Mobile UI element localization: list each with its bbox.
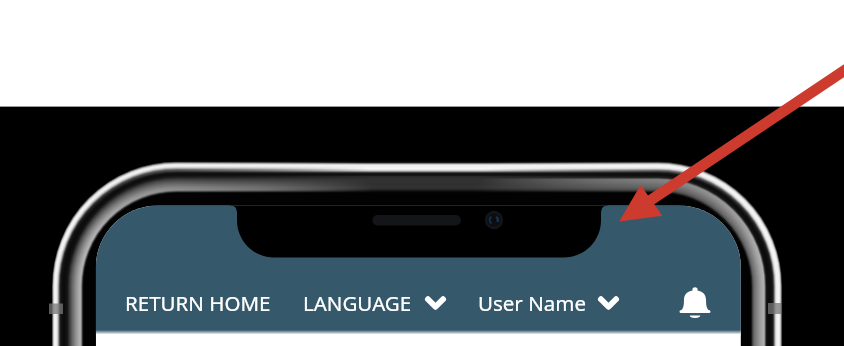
button[interactable]: RETURN HOME bbox=[125, 285, 271, 321]
staticText: User Name bbox=[478, 289, 586, 317]
button[interactable]: LANGUAGE bbox=[303, 285, 446, 321]
staticText: LANGUAGE bbox=[303, 289, 412, 317]
staticText: RETURN HOME bbox=[125, 289, 271, 317]
button[interactable]: Notifications bbox=[673, 279, 717, 323]
button[interactable]: User Name bbox=[478, 285, 619, 321]
